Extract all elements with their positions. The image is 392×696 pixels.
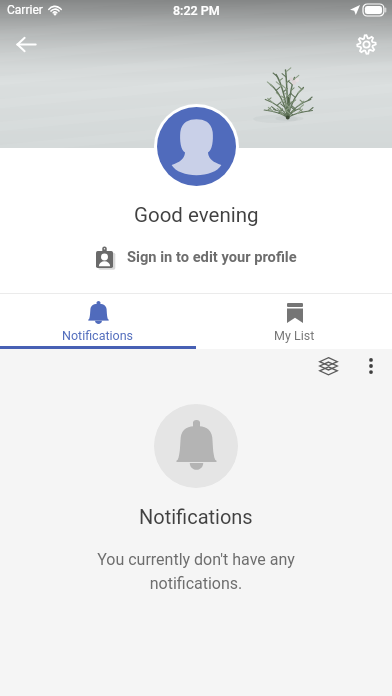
staticText: Notifications	[139, 505, 253, 528]
staticText: Sign in to edit your profile	[127, 248, 297, 265]
button[interactable]: My List	[196, 294, 392, 349]
staticText: Carrier	[7, 3, 43, 17]
button[interactable]: Notifications	[0, 294, 196, 349]
button[interactable]: More options	[355, 350, 387, 382]
staticText: Notifications	[62, 328, 134, 343]
button[interactable]: Profile picture	[154, 104, 239, 189]
button[interactable]: Sign in to edit your profile	[86, 240, 307, 272]
button[interactable]: Layers	[312, 350, 344, 382]
staticText: Good evening	[134, 203, 259, 227]
button[interactable]: Back	[8, 26, 44, 62]
staticText: You currently don't have any notificatio…	[97, 550, 295, 593]
staticText: 8:22 PM	[173, 3, 220, 18]
button[interactable]: Settings	[348, 26, 384, 62]
staticText: My List	[274, 328, 315, 343]
